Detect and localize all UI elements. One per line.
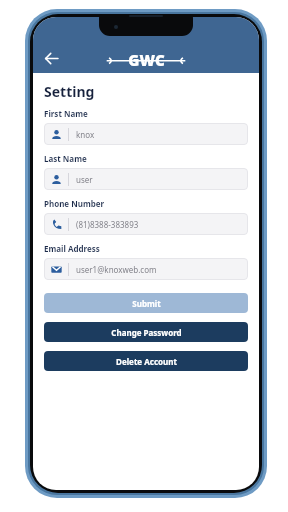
- staticText: First Name: [44, 108, 88, 119]
- button[interactable]: (81)8388-383893: [44, 213, 248, 235]
- staticText: Submit: [132, 298, 161, 309]
- staticText: Setting: [44, 82, 95, 101]
- staticText: Email Address: [44, 243, 100, 254]
- button[interactable]: GWC home: [104, 48, 188, 72]
- button[interactable]: Back: [38, 45, 64, 71]
- staticText: (81)8388-383893: [76, 219, 139, 230]
- button[interactable]: Change Password: [44, 322, 248, 342]
- button[interactable]: Submit: [44, 293, 248, 313]
- staticText: Change Password: [111, 327, 182, 338]
- staticText: GWC: [128, 50, 165, 70]
- staticText: knox: [76, 129, 95, 140]
- staticText: Delete Account: [116, 356, 177, 367]
- button[interactable]: knox: [44, 123, 248, 145]
- button[interactable]: user: [44, 168, 248, 190]
- staticText: Last Name: [44, 153, 87, 164]
- staticText: Phone Number: [44, 198, 105, 209]
- button[interactable]: Delete Account: [44, 351, 248, 371]
- staticText: user1@knoxweb.com: [76, 264, 157, 275]
- staticText: user: [76, 174, 93, 185]
- button[interactable]: user1@knoxweb.com: [44, 258, 248, 280]
